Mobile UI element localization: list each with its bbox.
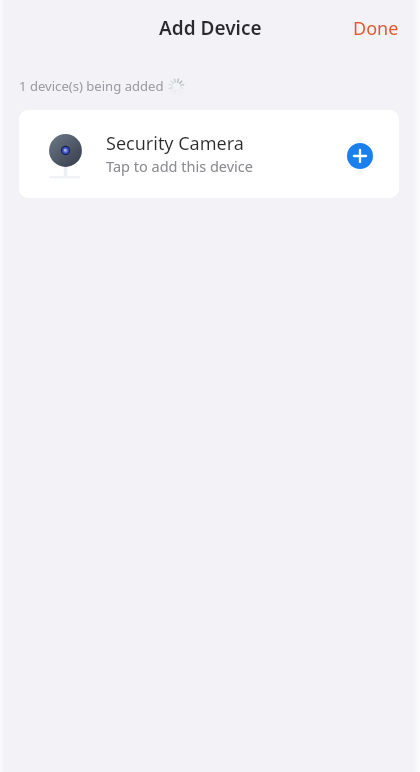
staticText: 1 device(s) being added [19, 77, 164, 95]
staticText: Security Camera [106, 131, 244, 156]
staticText: Done [353, 16, 399, 41]
staticText: Add Device [159, 15, 262, 41]
button[interactable]: Done [332, 6, 420, 51]
button[interactable]: Security Camera [19, 110, 399, 198]
button[interactable]: Add device [347, 143, 373, 169]
staticText: Tap to add this device [106, 156, 253, 176]
